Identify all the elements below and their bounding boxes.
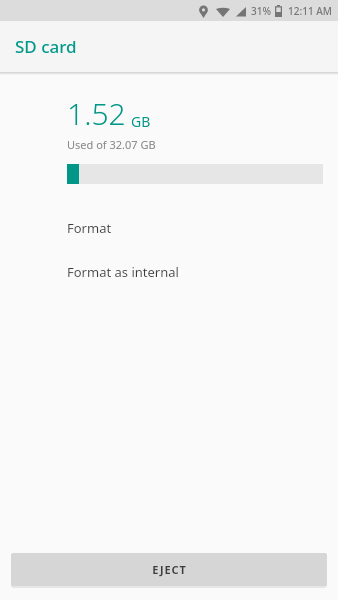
staticText: EJECT: [152, 562, 187, 577]
staticText: GB: [131, 112, 151, 131]
button[interactable]: Format: [0, 206, 338, 250]
button[interactable]: Format as internal: [0, 250, 338, 294]
staticText: 31%: [251, 4, 271, 18]
staticText: Format as internal: [67, 263, 179, 281]
staticText: 12:11 AM: [288, 4, 332, 18]
button[interactable]: EJECT: [11, 553, 327, 586]
staticText: Format: [67, 219, 112, 237]
staticText: 1.52: [67, 93, 126, 134]
staticText: SD card: [15, 35, 77, 58]
staticText: Used of 32.07 GB: [67, 137, 156, 152]
